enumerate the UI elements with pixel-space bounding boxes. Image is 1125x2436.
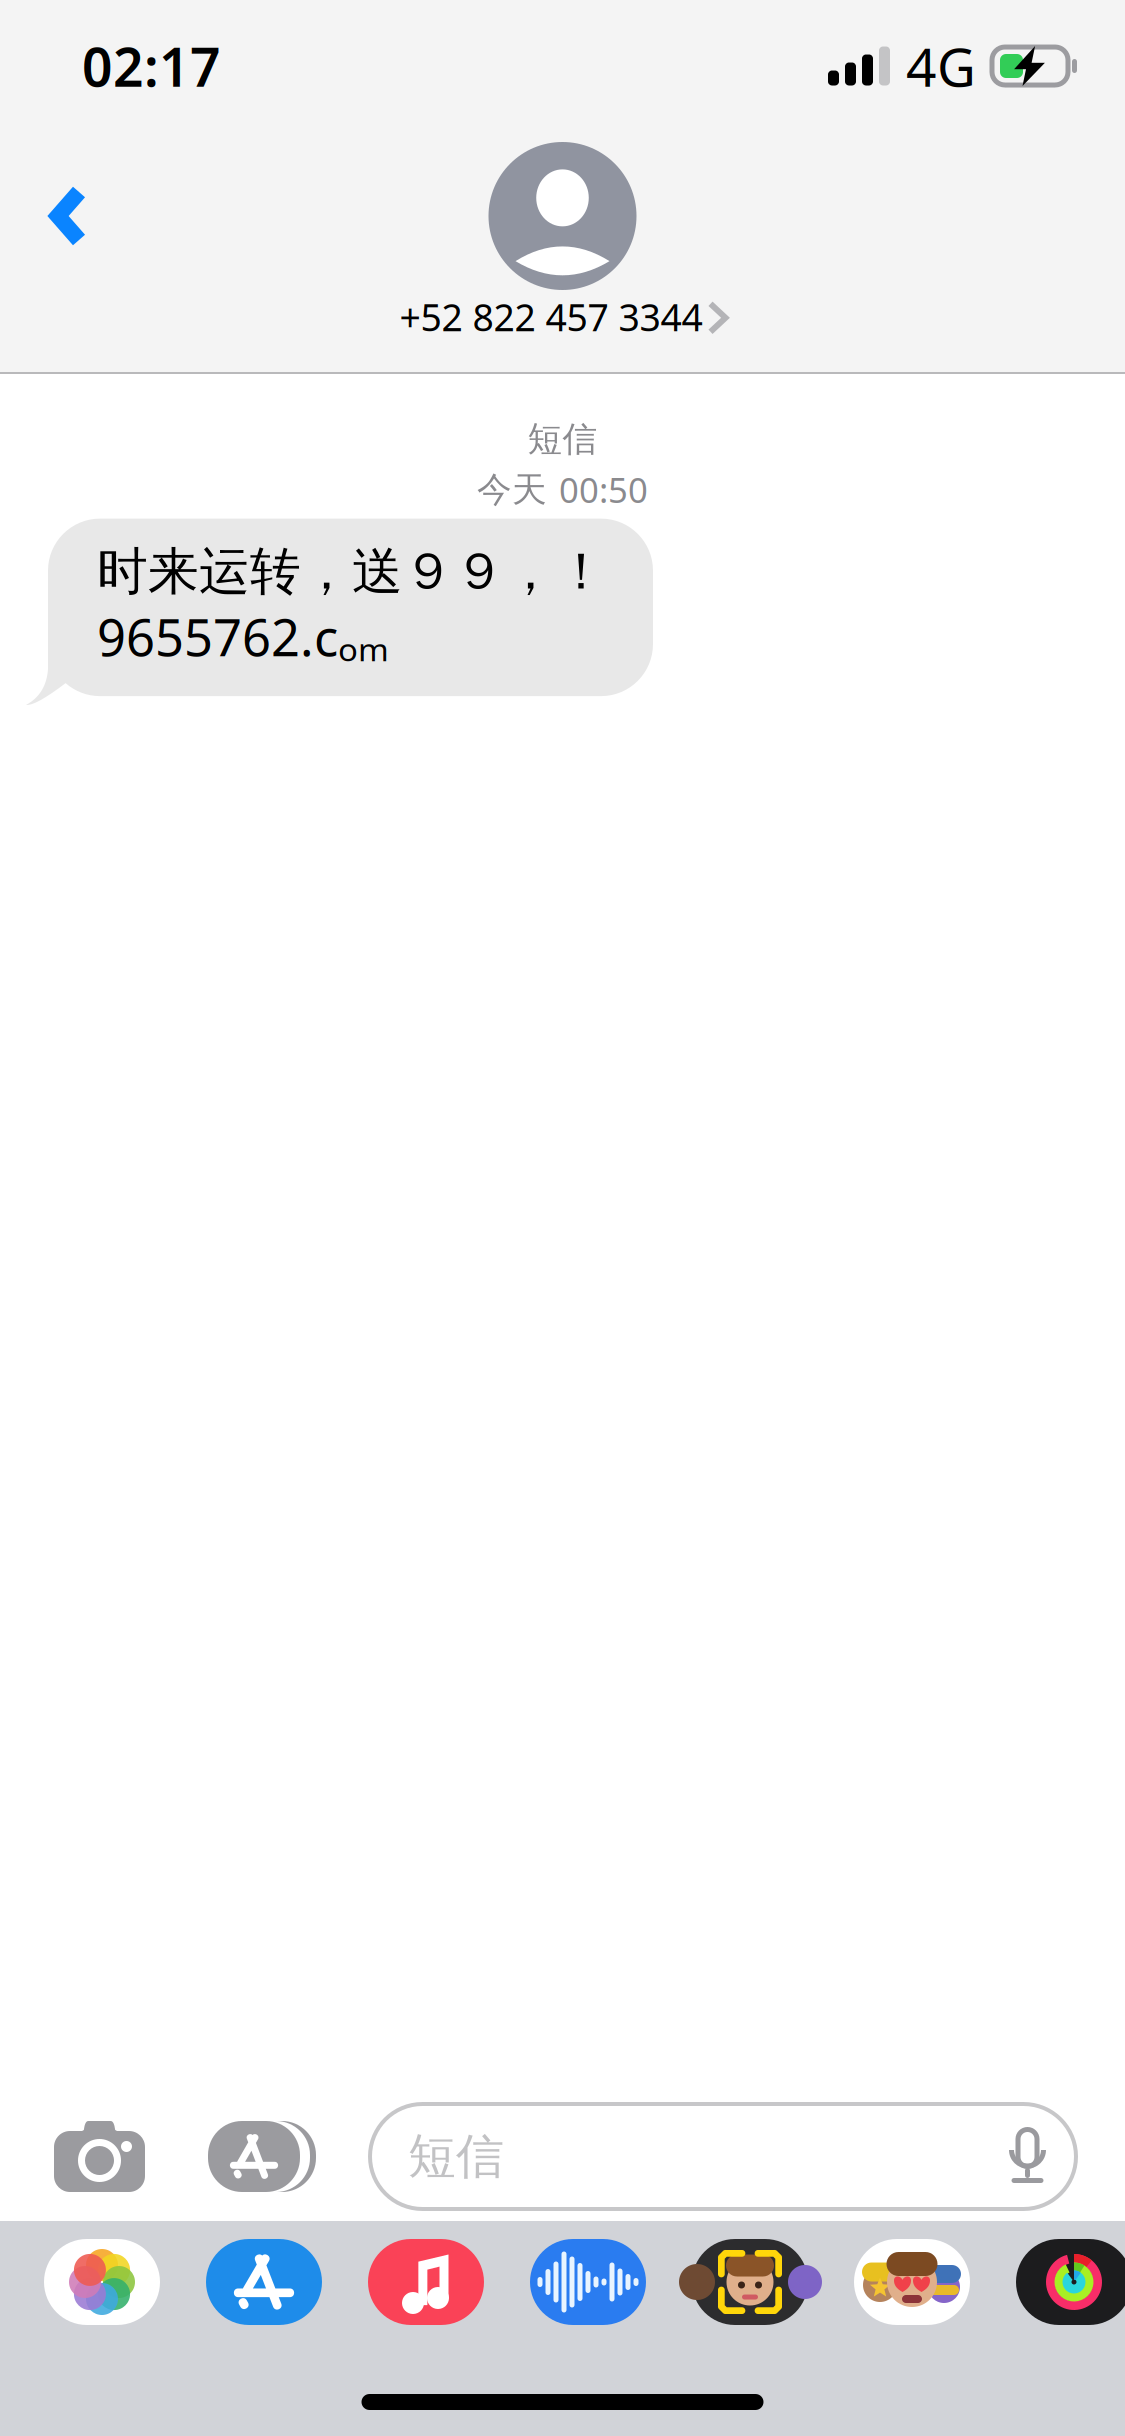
button[interactable]: Photos <box>44 2239 160 2325</box>
staticText: 短信 <box>408 2127 504 2186</box>
staticText: 今天 <box>477 468 547 511</box>
staticText: +52 822 457 3344 <box>399 292 702 342</box>
button[interactable]: Contact details <box>399 142 725 342</box>
button[interactable]: Back <box>0 140 143 364</box>
staticText: 时来运转，送９９，！ <box>97 541 607 603</box>
staticText: 00:50 <box>559 467 648 513</box>
staticText: 02:17 <box>82 31 221 101</box>
button[interactable]: Music <box>368 2239 484 2325</box>
button[interactable]: iMessage apps <box>208 2121 316 2192</box>
button[interactable]: Fitness <box>1016 2239 1125 2325</box>
button[interactable]: Camera <box>54 2121 145 2192</box>
button[interactable]: Memoji <box>692 2239 808 2325</box>
button[interactable]: Audio messages <box>530 2239 646 2325</box>
button[interactable]: Memoji stickers <box>854 2239 970 2325</box>
staticText: 短信 <box>527 418 597 461</box>
staticText: 9655762.cₒₘ <box>97 603 389 670</box>
staticText: 4G <box>906 31 976 101</box>
button[interactable]: App Store <box>206 2239 322 2325</box>
